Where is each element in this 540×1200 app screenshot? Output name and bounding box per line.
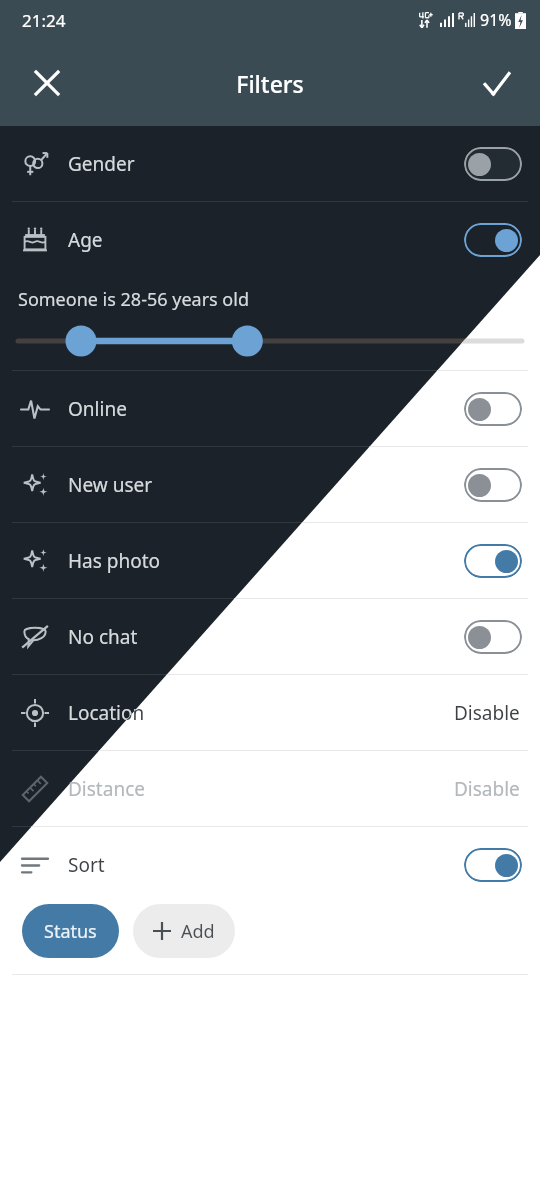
button[interactable]: Has photo — [0, 523, 540, 598]
button[interactable]: Off — [464, 468, 522, 502]
button[interactable]: On — [464, 848, 522, 882]
button[interactable]: Location — [0, 675, 540, 750]
staticText: Someone is 28-56 years old — [18, 287, 249, 312]
button[interactable]: Off — [464, 620, 522, 654]
staticText: Online — [68, 396, 127, 422]
button[interactable]: Gender — [0, 126, 540, 201]
staticText: Add — [181, 919, 215, 944]
staticText: Disable — [454, 776, 520, 802]
button[interactable]: No chat — [0, 599, 540, 674]
staticText: Filters — [236, 68, 304, 99]
button[interactable]: Off — [464, 392, 522, 426]
staticText: Location — [68, 700, 145, 726]
button[interactable]: On — [464, 544, 522, 578]
button[interactable]: On — [464, 223, 522, 257]
staticText: Status — [44, 919, 97, 944]
button[interactable]: Off — [464, 620, 522, 654]
button[interactable]: Close — [16, 52, 78, 114]
staticText: Someone is 28-56 years old — [18, 287, 249, 312]
button[interactable]: Status — [22, 904, 119, 958]
staticText: Disable — [454, 776, 520, 802]
button[interactable]: New user — [0, 447, 540, 522]
button[interactable]: Off — [464, 147, 522, 181]
button[interactable]: Close — [16, 52, 78, 114]
button[interactable]: Online — [0, 371, 540, 446]
button[interactable]: Distance — [0, 751, 540, 826]
button[interactable]: Add — [133, 904, 235, 958]
staticText: No chat — [68, 624, 138, 650]
staticText: Distance — [68, 776, 145, 802]
button[interactable]: Has photo — [0, 523, 540, 598]
button[interactable]: Location — [0, 675, 540, 750]
staticText: New user — [68, 472, 153, 498]
staticText: Disable — [454, 700, 520, 726]
button[interactable]: Add — [133, 904, 235, 958]
button[interactable]: On — [464, 223, 522, 257]
staticText: Status — [44, 919, 97, 944]
button[interactable]: Age — [0, 202, 540, 277]
staticText: Gender — [68, 151, 135, 177]
staticText: 21:24 — [22, 9, 66, 32]
staticText: Distance — [68, 776, 145, 802]
button[interactable]: Sort — [0, 827, 540, 902]
staticText: Has photo — [68, 548, 161, 574]
staticText: Add — [181, 919, 215, 944]
button[interactable]: On — [464, 848, 522, 882]
staticText: 91% — [480, 9, 512, 31]
staticText: Age — [68, 227, 103, 253]
staticText: No chat — [68, 624, 138, 650]
button[interactable]: Age — [0, 202, 540, 277]
staticText: Sort — [68, 852, 105, 878]
button[interactable]: Off — [464, 392, 522, 426]
staticText: Filters — [236, 68, 304, 99]
button[interactable]: Distance — [0, 751, 540, 826]
button[interactable]: Apply — [466, 52, 528, 114]
button[interactable]: Off — [464, 468, 522, 502]
button[interactable]: Online — [0, 371, 540, 446]
button[interactable]: On — [464, 544, 522, 578]
staticText: Disable — [454, 700, 520, 726]
button[interactable]: Status — [22, 904, 119, 958]
button[interactable]: Off — [464, 147, 522, 181]
staticText: 21:24 — [22, 9, 66, 32]
button[interactable]: Apply — [466, 52, 528, 114]
staticText: Online — [68, 396, 127, 422]
staticText: Sort — [68, 852, 105, 878]
staticText: Has photo — [68, 548, 161, 574]
button[interactable]: Sort — [0, 827, 540, 902]
button[interactable]: Gender — [0, 126, 540, 201]
staticText: Age — [68, 227, 103, 253]
staticText: 91% — [480, 9, 512, 31]
staticText: New user — [68, 472, 153, 498]
staticText: Gender — [68, 151, 135, 177]
staticText: Location — [68, 700, 145, 726]
button[interactable]: No chat — [0, 599, 540, 674]
button[interactable]: New user — [0, 447, 540, 522]
